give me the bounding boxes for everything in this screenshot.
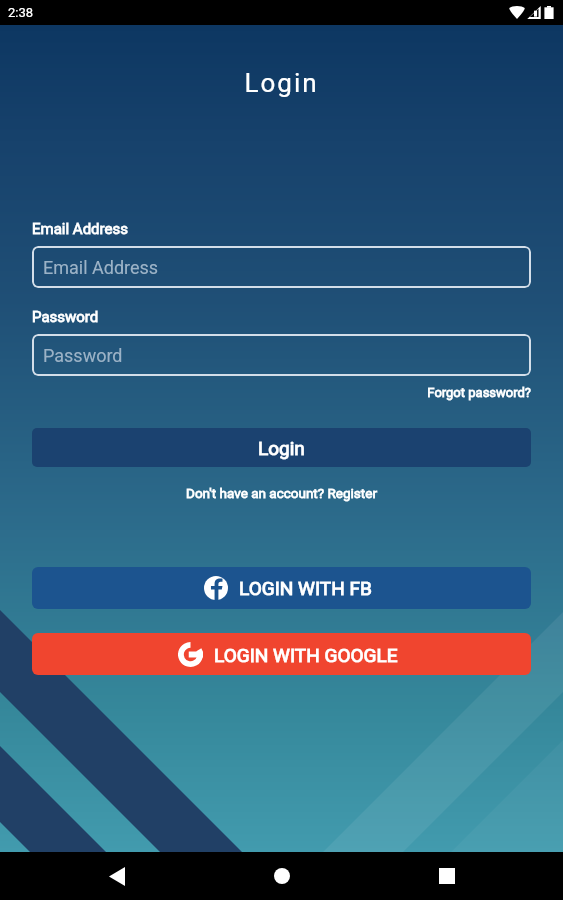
- staticText: Password: [32, 308, 99, 326]
- staticText: Login: [258, 437, 305, 459]
- button[interactable]: LOGIN WITH GOOGLE: [32, 633, 531, 675]
- button[interactable]: Email Address: [32, 246, 531, 288]
- button[interactable]: Back: [93, 852, 141, 900]
- staticText: Email Address: [32, 220, 128, 238]
- staticText: Password: [43, 345, 123, 366]
- staticText: Login: [0, 68, 563, 98]
- staticText: 2:38: [8, 5, 34, 20]
- button[interactable]: Password: [32, 334, 531, 376]
- button[interactable]: Home: [258, 852, 306, 900]
- staticText: LOGIN WITH FB: [239, 577, 372, 599]
- button[interactable]: Don't have an account? Register: [32, 485, 531, 501]
- button[interactable]: Recent apps: [423, 852, 471, 900]
- button[interactable]: Login: [32, 428, 531, 467]
- staticText: Email Address: [43, 257, 159, 278]
- button[interactable]: Forgot password?: [32, 385, 531, 400]
- button[interactable]: LOGIN WITH FB: [32, 567, 531, 609]
- staticText: LOGIN WITH GOOGLE: [214, 644, 398, 666]
